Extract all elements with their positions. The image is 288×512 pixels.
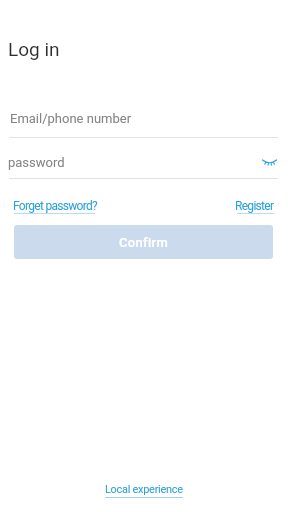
button[interactable]: Register (235, 199, 274, 213)
button[interactable] (261, 158, 278, 168)
staticText: Email/phone number (10, 111, 132, 126)
staticText: Forget password? (13, 199, 98, 213)
staticText: password (8, 155, 65, 170)
button[interactable]: Email/phone number (0, 100, 288, 138)
button[interactable]: Local experience (105, 483, 183, 496)
button[interactable]: password (0, 142, 288, 179)
button[interactable]: Forget password? (13, 199, 98, 213)
button[interactable]: Confirm (14, 225, 273, 259)
staticText: Local experience (105, 483, 183, 496)
staticText: Register (235, 199, 274, 213)
staticText: Log in (8, 38, 60, 60)
staticText: Confirm (119, 235, 169, 250)
